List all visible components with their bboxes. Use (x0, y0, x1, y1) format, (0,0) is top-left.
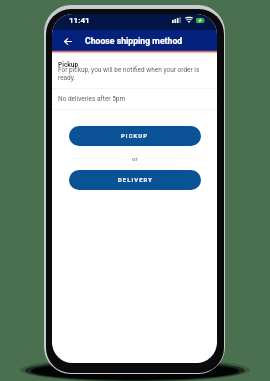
staticText: 11:41 (69, 16, 90, 25)
staticText: DELIVERY (118, 177, 153, 184)
staticText: Choose shipping method (85, 36, 183, 46)
staticText: No deliveries after 5pm (58, 95, 126, 103)
button[interactable]: No deliveries after 5pm (52, 88, 217, 110)
button[interactable]: DELIVERY (69, 170, 201, 190)
staticText: PICKUP (121, 133, 149, 140)
button[interactable]: PICKUP (69, 126, 201, 146)
staticText: For pickup, you will be notified when yo… (58, 66, 204, 82)
staticText: Pickup (58, 61, 79, 69)
staticText: or (132, 155, 138, 162)
button[interactable]: Back (58, 31, 78, 51)
